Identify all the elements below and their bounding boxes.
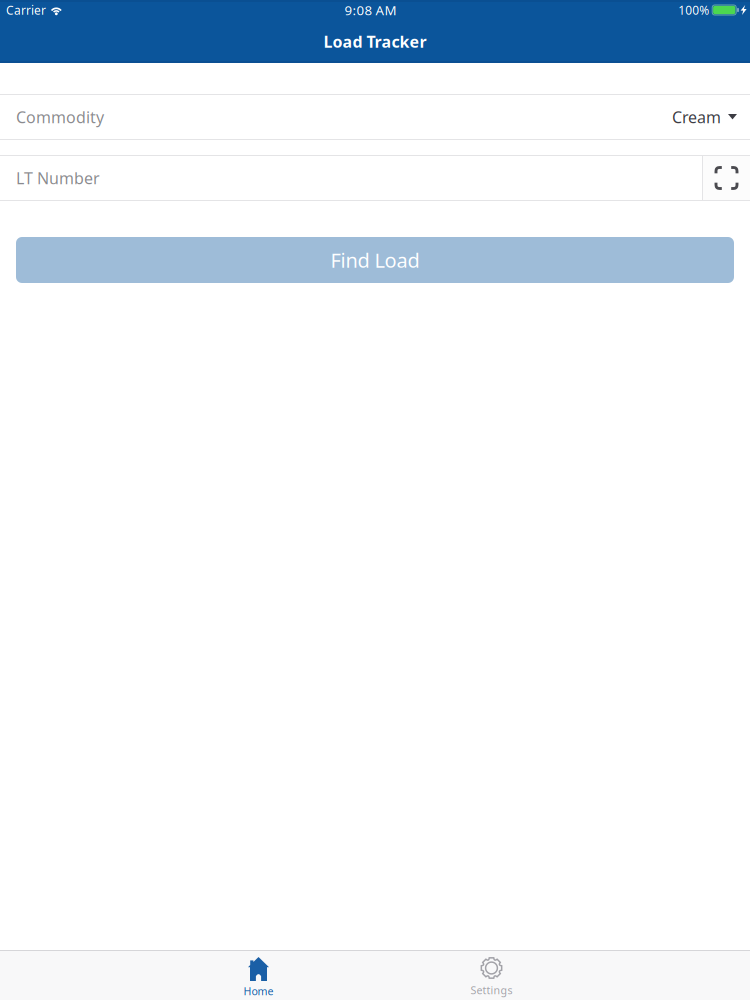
staticText: 100%	[678, 2, 709, 18]
button[interactable]: Commodity	[0, 95, 750, 139]
staticText: Commodity	[16, 106, 104, 128]
button[interactable]: Home	[142, 951, 375, 1000]
staticText: LT Number	[16, 167, 100, 189]
staticText: 9:08 AM	[344, 1, 396, 19]
staticText: Home	[243, 984, 273, 998]
staticText: Carrier	[6, 2, 46, 18]
staticText: Settings	[470, 983, 512, 997]
button[interactable]: Settings	[375, 951, 608, 1000]
staticText: Cream	[672, 106, 721, 128]
staticText: Load Tracker	[323, 31, 426, 52]
button[interactable]: Find Load	[16, 237, 734, 283]
staticText: Find Load	[330, 247, 419, 273]
button[interactable]: LT Number text field	[0, 156, 702, 200]
button[interactable]: Scan LT number	[703, 156, 750, 200]
